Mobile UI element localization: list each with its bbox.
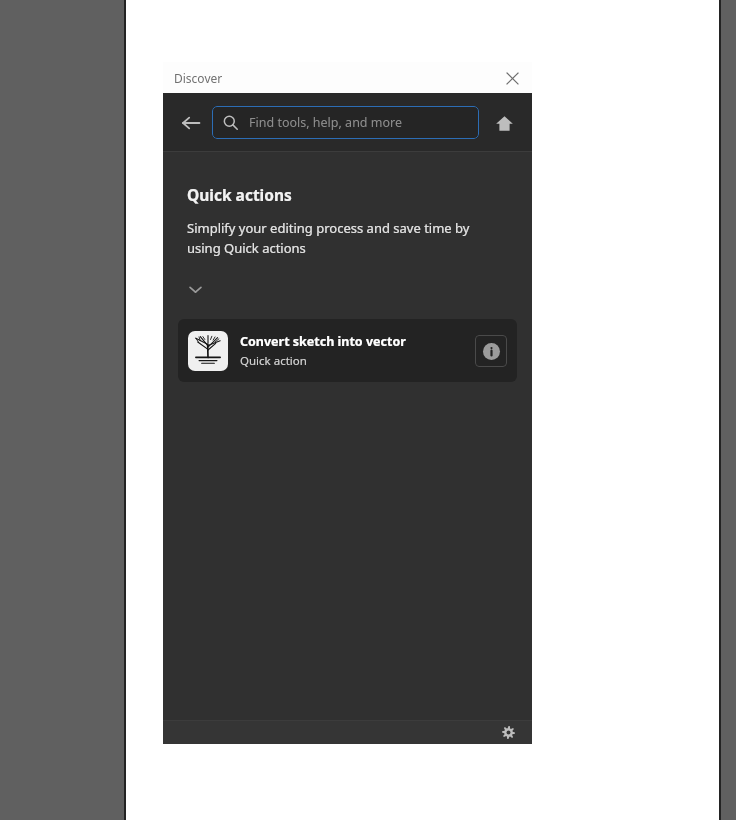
- staticText: Find tools, help, and more: [249, 114, 403, 131]
- button[interactable]: Back: [178, 110, 204, 136]
- button[interactable]: Convert sketch into vector: [178, 319, 517, 382]
- staticText: Quick actions: [187, 184, 292, 205]
- button[interactable]: Settings: [498, 722, 518, 742]
- button[interactable]: Close: [500, 66, 524, 90]
- staticText: Simplify your editing process and save t…: [187, 219, 488, 257]
- button[interactable]: Expand: [179, 273, 211, 305]
- staticText: Convert sketch into vector: [240, 333, 406, 350]
- button[interactable]: Home: [491, 110, 517, 136]
- staticText: Quick action: [240, 353, 307, 369]
- button[interactable]: Info: [475, 335, 507, 367]
- button[interactable]: Find tools, help, and more: [212, 106, 479, 139]
- staticText: Discover: [174, 70, 223, 86]
